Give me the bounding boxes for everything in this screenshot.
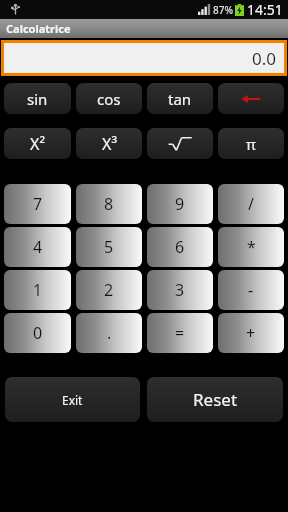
staticText: 4 [33,236,43,258]
button[interactable]: / [218,184,284,224]
button[interactable]: X² [4,128,71,159]
button[interactable]: 2 [76,270,142,310]
staticText: 8 [104,193,114,215]
button[interactable]: 8 [76,184,142,224]
staticText: 0.0 [251,47,276,70]
staticText: 6 [175,236,185,258]
staticText: * [247,236,256,258]
staticText: 0 [33,322,43,344]
button[interactable]: π [218,128,284,159]
staticText: 5 [104,236,114,258]
button[interactable]: 7 [4,184,71,224]
button[interactable]: 5 [76,227,142,267]
button[interactable]: X³ [76,128,142,159]
staticText: + [246,322,256,344]
button[interactable]: sin [4,83,71,114]
staticText: / [248,193,254,215]
staticText: . [107,322,112,344]
button[interactable]: * [218,227,284,267]
button[interactable]: + [218,313,284,353]
staticText: 3 [175,279,185,301]
staticText: 7 [33,193,43,215]
button[interactable]: Exit [5,377,140,422]
staticText: Exit [62,392,83,408]
staticText: π [246,134,256,154]
button[interactable]: = [147,313,213,353]
button[interactable]: 6 [147,227,213,267]
staticText: X³ [102,133,117,155]
staticText: X² [30,133,45,155]
button[interactable]: - [218,270,284,310]
staticText: 14:51 [247,0,283,19]
staticText: cos [97,89,121,109]
staticText: 87% [213,3,233,17]
button[interactable]: cos [76,83,142,114]
button[interactable]: tan [147,83,213,114]
staticText: - [248,279,254,301]
button[interactable]: 9 [147,184,213,224]
staticText: Calcolatrice [6,21,71,36]
staticText: 2 [104,279,114,301]
button[interactable]: . [76,313,142,353]
button[interactable]: 0 [4,313,71,353]
staticText: 1 [33,279,43,301]
staticText: 9 [175,193,185,215]
button[interactable]: 3 [147,270,213,310]
button[interactable]: 4 [4,227,71,267]
staticText: sin [27,89,48,109]
staticText: = [175,322,185,344]
button[interactable]: 1 [4,270,71,310]
button[interactable]: Backspace [218,83,284,114]
button[interactable]: Square root [147,128,213,159]
staticText: Reset [193,388,238,411]
staticText: tan [168,89,192,109]
button[interactable]: Reset [147,377,283,422]
